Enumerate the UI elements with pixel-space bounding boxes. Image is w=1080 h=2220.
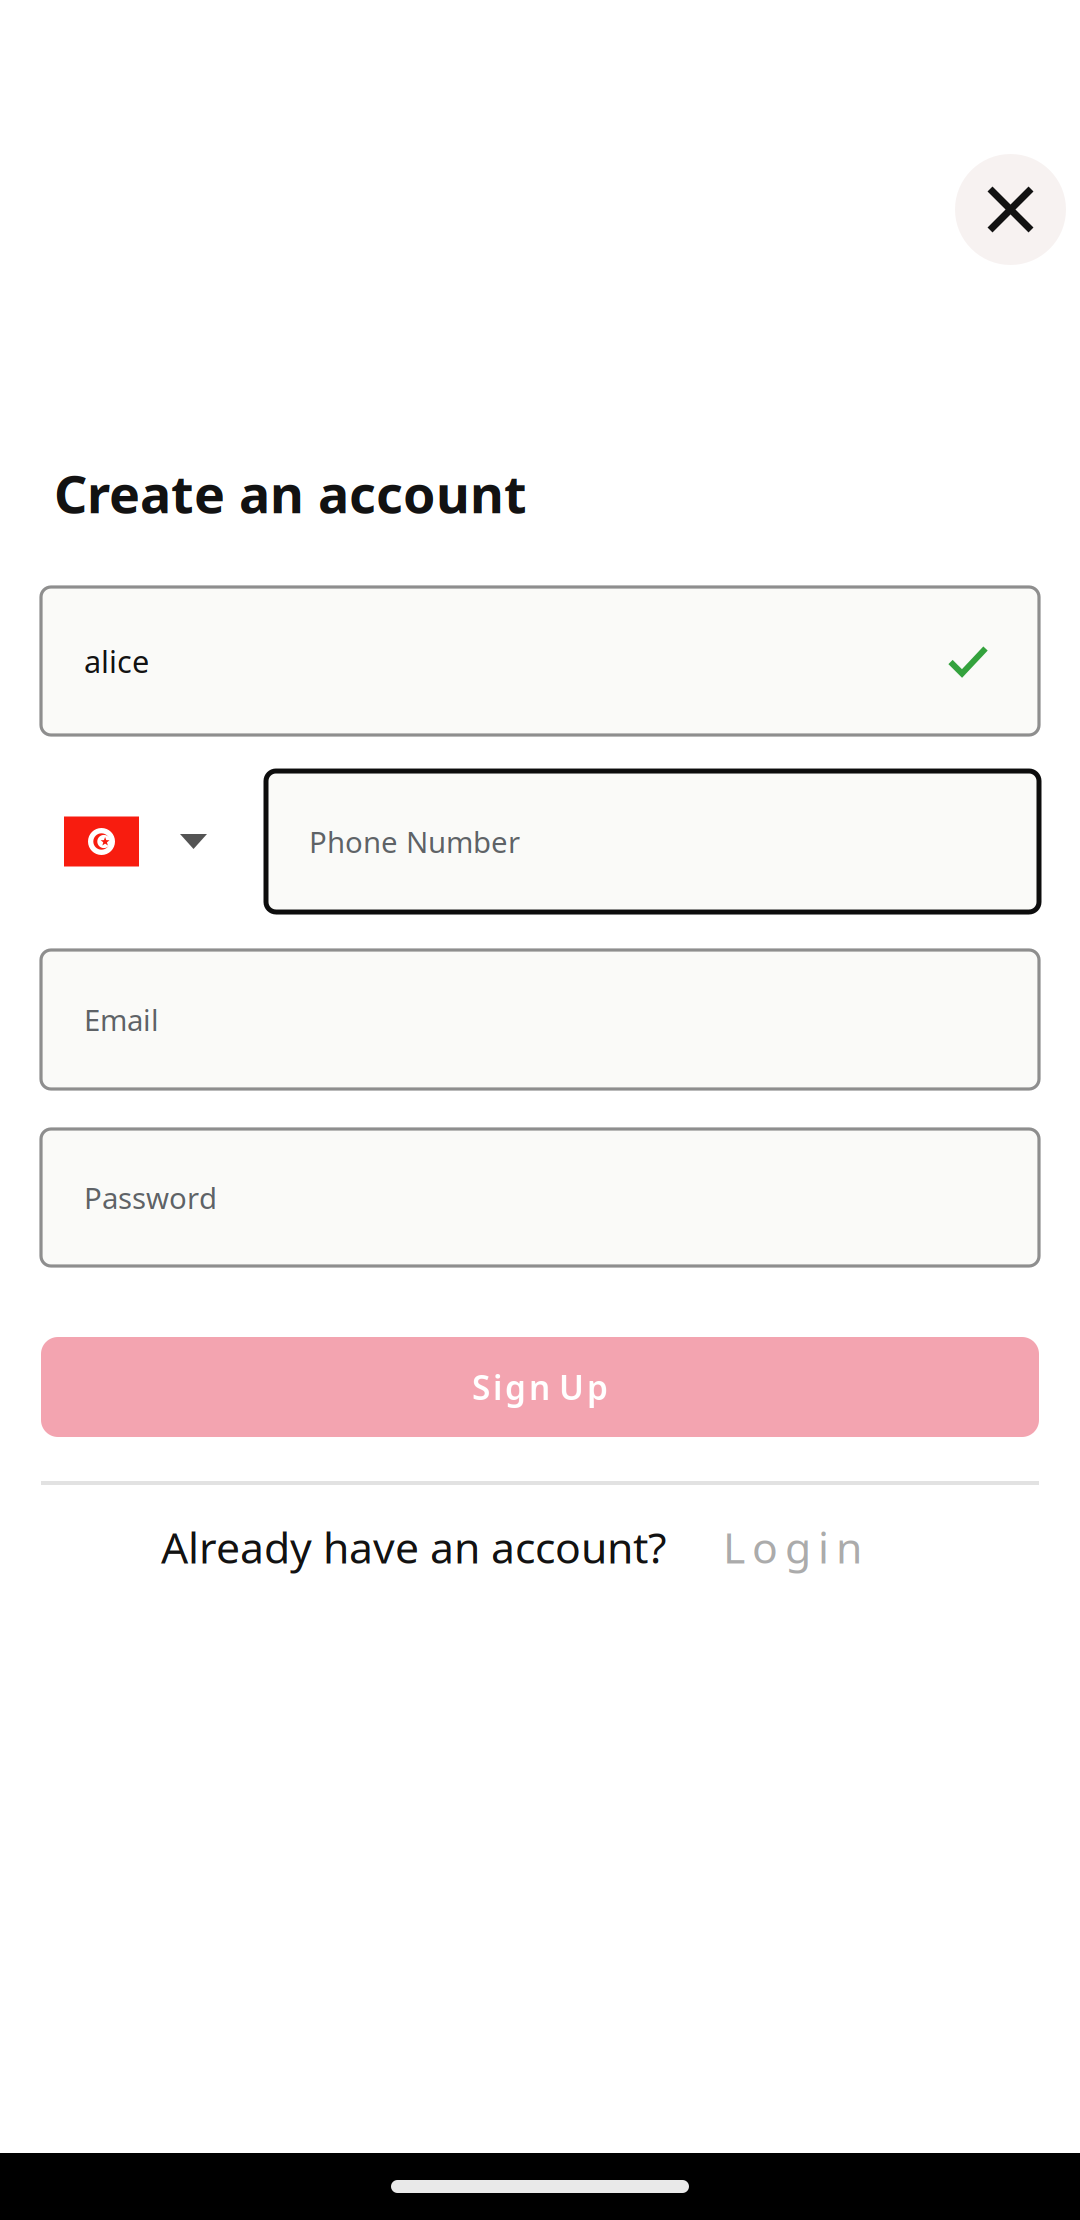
button[interactable]: S i g n U p: [41, 1337, 1039, 1437]
button[interactable]: Close: [955, 154, 1066, 265]
button[interactable]: L o g i n: [723, 1516, 862, 1578]
staticText: Create an account: [54, 458, 527, 528]
staticText: Phone Number: [309, 822, 520, 861]
staticText: S i g n U p: [472, 1365, 608, 1409]
button[interactable]: Select country code: [41, 771, 266, 912]
staticText: alice: [84, 641, 149, 681]
staticText: Password: [84, 1178, 217, 1217]
staticText: Email: [84, 1000, 159, 1039]
staticText: Already have an account?: [161, 1519, 667, 1575]
staticText: L o g i n: [723, 1519, 862, 1575]
